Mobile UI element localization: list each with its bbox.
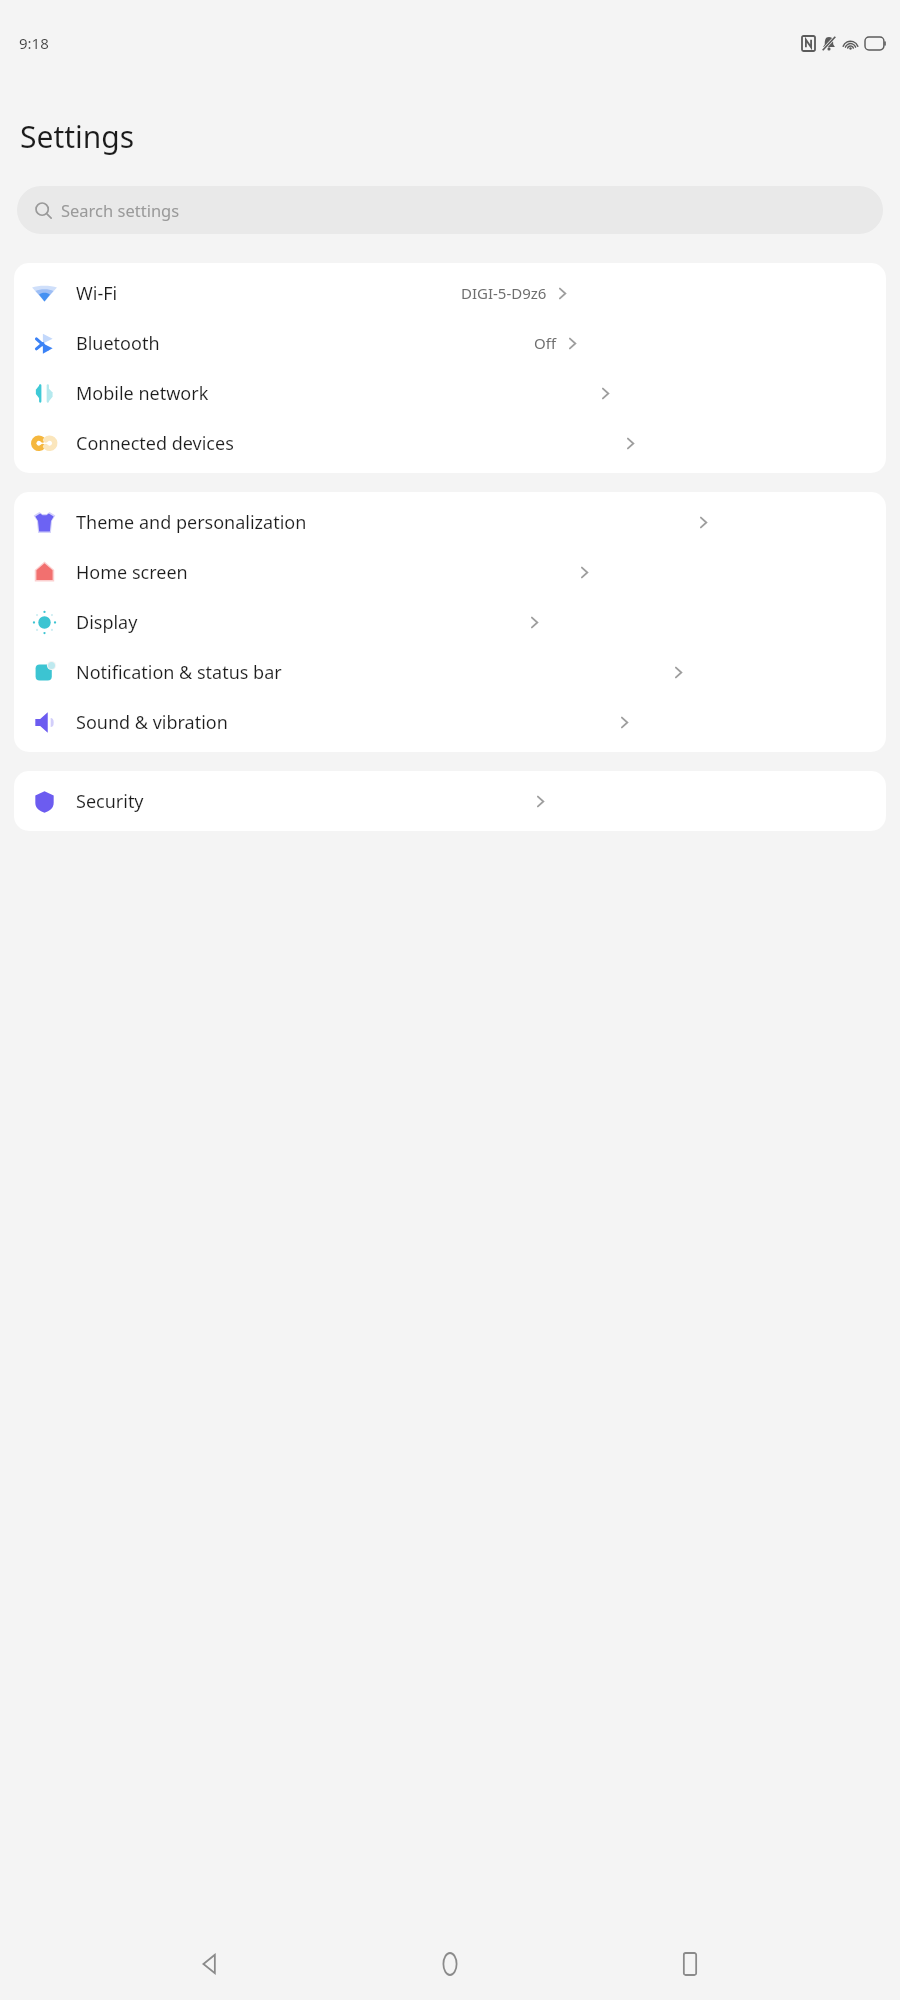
staticText: Search settings bbox=[61, 199, 180, 221]
staticText: Mobile network bbox=[76, 381, 209, 406]
staticText: Settings bbox=[20, 116, 135, 157]
button[interactable]: Wi-Fi bbox=[14, 268, 886, 318]
button[interactable]: Display bbox=[14, 597, 886, 647]
button[interactable]: Home screen bbox=[14, 547, 886, 597]
staticText: Theme and personalization bbox=[76, 510, 307, 535]
button[interactable]: Bluetooth bbox=[14, 318, 886, 368]
button[interactable]: Notification & status bar bbox=[14, 647, 886, 697]
staticText: Home screen bbox=[76, 560, 188, 585]
button[interactable]: Home bbox=[420, 1934, 480, 1994]
button[interactable]: Back bbox=[180, 1934, 240, 1994]
staticText: Security bbox=[76, 789, 144, 814]
button[interactable]: Recents bbox=[660, 1934, 720, 1994]
button[interactable]: Mobile network bbox=[14, 368, 886, 418]
staticText: Off bbox=[534, 333, 557, 353]
button[interactable]: Connected devices bbox=[14, 418, 886, 468]
button[interactable]: Security bbox=[14, 776, 886, 826]
staticText: Notification & status bar bbox=[76, 660, 282, 685]
staticText: Wi-Fi bbox=[76, 281, 118, 306]
staticText: Sound & vibration bbox=[76, 710, 228, 735]
button[interactable]: Sound & vibration bbox=[14, 697, 886, 747]
button[interactable]: Theme and personalization bbox=[14, 497, 886, 547]
staticText: 9:18 bbox=[19, 33, 49, 53]
staticText: DIGI-5-D9z6 bbox=[461, 283, 547, 303]
staticText: Display bbox=[76, 610, 138, 635]
staticText: Connected devices bbox=[76, 431, 234, 456]
staticText: Bluetooth bbox=[76, 331, 160, 356]
button[interactable]: Search settings bbox=[17, 186, 883, 234]
